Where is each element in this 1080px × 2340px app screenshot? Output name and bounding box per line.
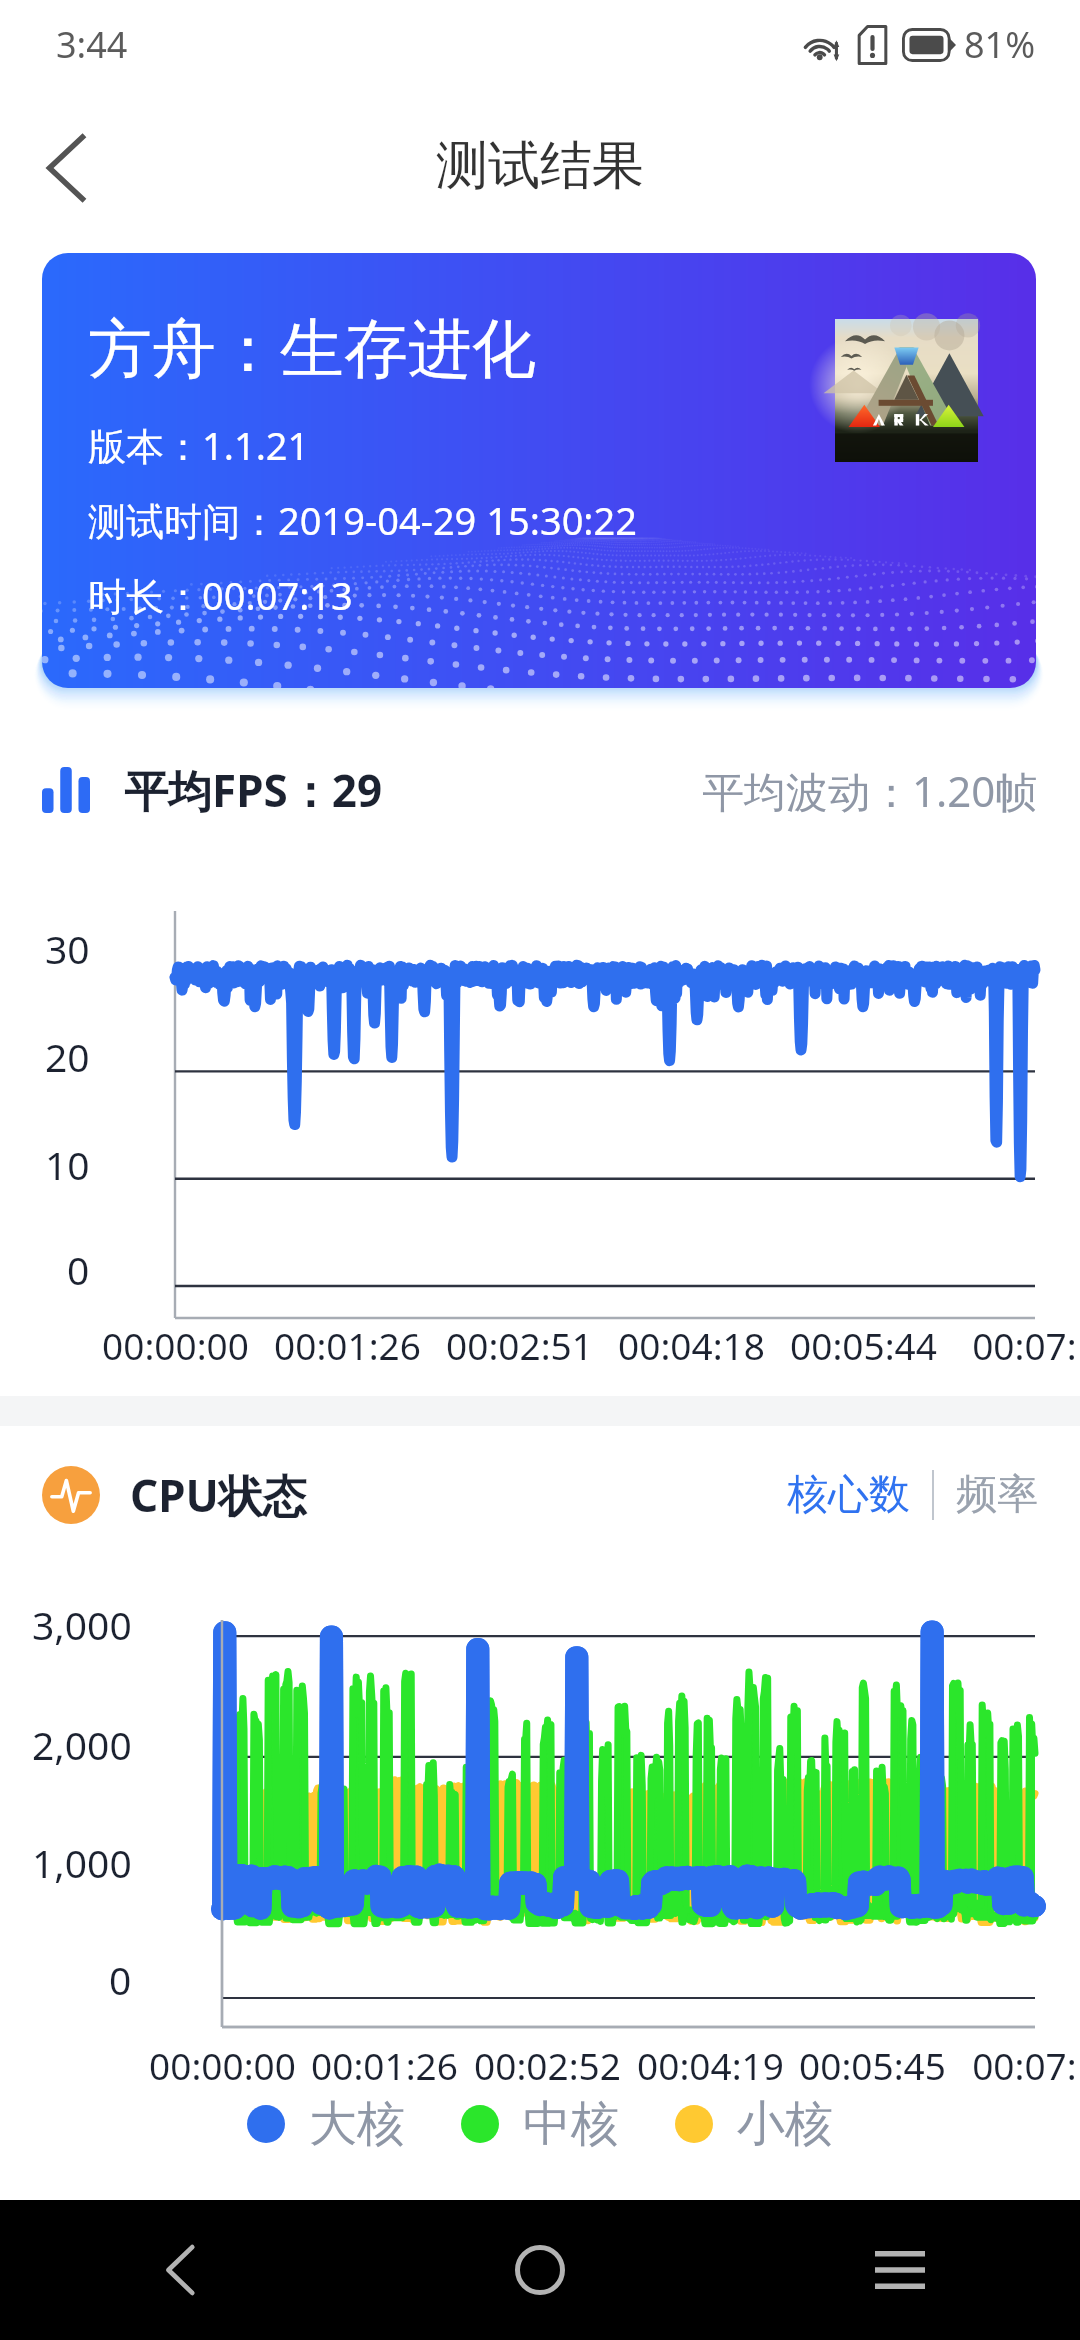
staticText: 1,000 [32, 1836, 132, 1889]
staticText: 00:02:52 [474, 2040, 621, 2090]
staticText: 30 [45, 922, 90, 975]
button[interactable]: 方舟：生存进化 [42, 253, 1036, 688]
staticText: 小核 [737, 2094, 833, 2154]
staticText: 平均FPS：29 [124, 760, 383, 820]
staticText: 00:07:1 [972, 2040, 1080, 2090]
staticText: 测试时间：2019-04-29 15:30:22 [88, 494, 638, 546]
staticText: 00:07:1 [972, 1320, 1080, 1370]
button[interactable]: Back [18, 113, 128, 223]
button[interactable]: 小核 [673, 2090, 835, 2158]
staticText: 0 [109, 1953, 132, 2006]
staticText: 版本：1.1.21 [88, 419, 310, 471]
button[interactable]: Recent apps [720, 2200, 1080, 2340]
staticText: 00:04:19 [637, 2040, 784, 2090]
staticText: 10 [45, 1138, 90, 1191]
button[interactable]: 核心数 [781, 1461, 916, 1529]
staticText: 00:04:18 [618, 1320, 765, 1370]
button[interactable]: 中核 [459, 2090, 621, 2158]
staticText: 中核 [523, 2094, 619, 2154]
staticText: 0 [67, 1243, 90, 1296]
button[interactable]: Home [360, 2200, 720, 2340]
staticText: 3:44 [56, 20, 128, 69]
staticText: 平均波动：1.20帧 [702, 762, 1038, 819]
staticText: 00:01:26 [274, 1320, 421, 1370]
staticText: 时长：00:07:13 [88, 569, 353, 621]
staticText: 大核 [309, 2094, 405, 2154]
button[interactable]: Back [0, 2200, 360, 2340]
staticText: 00:05:44 [790, 1320, 937, 1370]
button[interactable]: 大核 [245, 2090, 407, 2158]
staticText: 方舟：生存进化 [88, 309, 536, 390]
staticText: 测试结果 [436, 133, 644, 199]
staticText: 3,000 [32, 1598, 132, 1651]
staticText: 20 [45, 1030, 90, 1083]
staticText: 2,000 [32, 1718, 132, 1771]
staticText: CPU状态 [130, 1465, 307, 1525]
staticText: 核心数 [787, 1469, 910, 1521]
staticText: 频率 [956, 1469, 1038, 1521]
staticText: 00:00:00 [102, 1320, 249, 1370]
staticText: 00:00:00 [149, 2040, 296, 2090]
staticText: 00:05:45 [799, 2040, 946, 2090]
staticText: 00:02:51 [446, 1320, 593, 1370]
button[interactable]: 频率 [950, 1461, 1038, 1529]
staticText: 81% [964, 20, 1036, 69]
staticText: 00:01:26 [311, 2040, 458, 2090]
